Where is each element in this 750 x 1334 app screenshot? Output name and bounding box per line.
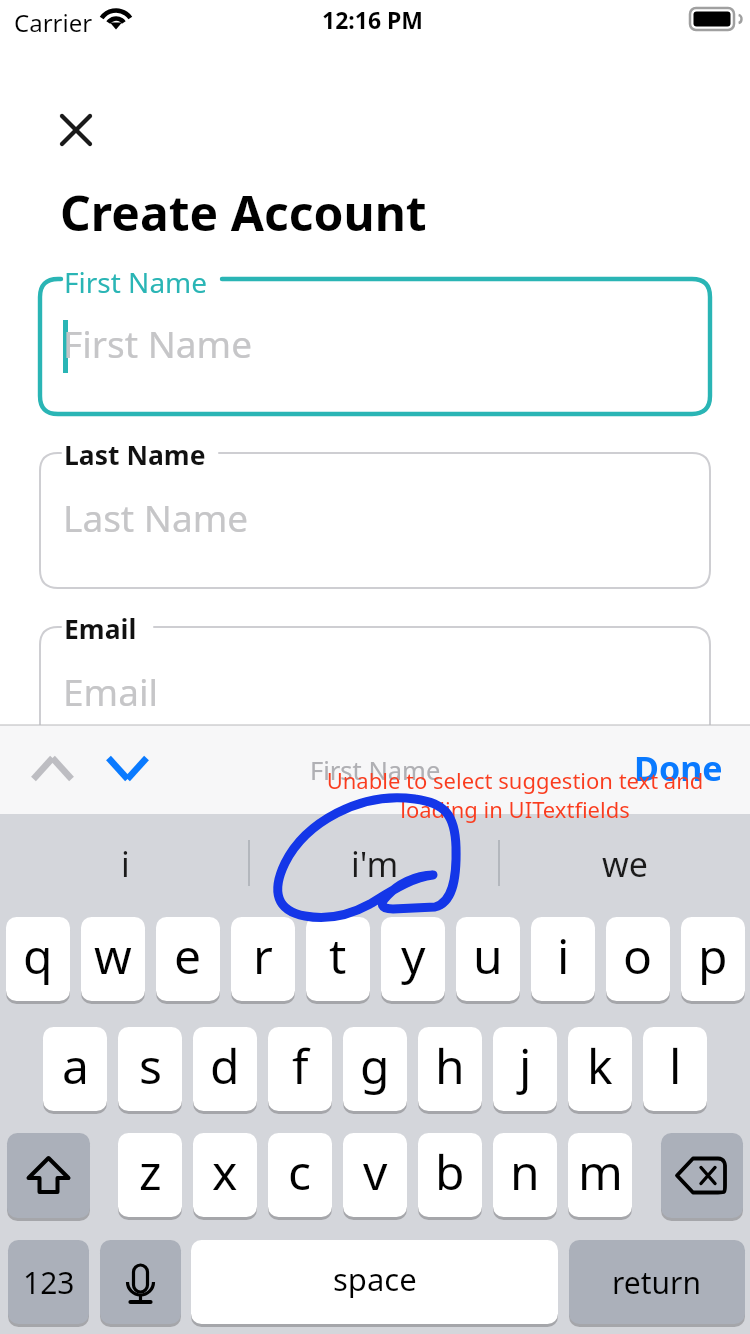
staticText: c	[288, 1139, 312, 1204]
button[interactable]: e	[156, 917, 220, 1001]
button[interactable]: i	[0, 816, 250, 915]
button[interactable]: m	[568, 1133, 632, 1217]
button[interactable]: g	[343, 1027, 407, 1111]
staticText: p	[698, 923, 728, 988]
button[interactable]: Last Name	[40, 453, 710, 588]
button[interactable]: Key	[7, 1133, 90, 1218]
staticText: Last Name	[63, 492, 249, 542]
button[interactable]: d	[193, 1027, 257, 1111]
button[interactable]: 123	[8, 1240, 89, 1324]
staticText: Last Name	[64, 437, 206, 473]
button[interactable]: i'm	[250, 816, 500, 915]
staticText: l	[669, 1033, 682, 1098]
staticText: z	[139, 1139, 162, 1204]
staticText: d	[210, 1033, 240, 1098]
button[interactable]: j	[493, 1027, 557, 1111]
staticText: g	[360, 1033, 390, 1098]
staticText: b	[435, 1139, 465, 1204]
button[interactable]: t	[306, 917, 370, 1001]
staticText: Carrier	[14, 6, 93, 39]
button[interactable]: space	[191, 1240, 558, 1324]
staticText: x	[212, 1139, 238, 1204]
button[interactable]: a	[43, 1027, 107, 1111]
staticText: a	[62, 1033, 89, 1098]
staticText: space	[333, 1258, 417, 1300]
button[interactable]: p	[681, 917, 745, 1001]
button[interactable]: u	[456, 917, 520, 1001]
button[interactable]: h	[418, 1027, 482, 1111]
button[interactable]: n	[493, 1133, 557, 1217]
staticText: 123	[23, 1262, 75, 1303]
staticText: e	[174, 923, 202, 988]
button[interactable]: q	[6, 917, 70, 1001]
button[interactable]: Done	[634, 745, 734, 791]
staticText: i	[557, 923, 570, 988]
staticText: Email	[64, 611, 137, 647]
staticText: v	[363, 1139, 388, 1204]
staticText: 12:16 PM	[322, 4, 424, 35]
staticText: o	[623, 923, 653, 988]
staticText: j	[519, 1033, 532, 1098]
button[interactable]: r	[231, 917, 295, 1001]
staticText: Unable to select suggestion text and loa…	[215, 765, 750, 824]
button[interactable]: b	[418, 1133, 482, 1217]
staticText: m	[578, 1139, 623, 1204]
button[interactable]: c	[268, 1133, 332, 1217]
button[interactable]: v	[343, 1133, 407, 1217]
button[interactable]: return	[569, 1240, 745, 1324]
staticText: r	[253, 923, 273, 988]
staticText: u	[473, 923, 503, 988]
staticText: i'm	[351, 841, 399, 887]
button[interactable]: k	[568, 1027, 632, 1111]
staticText: n	[510, 1139, 540, 1204]
staticText: s	[139, 1033, 162, 1098]
button[interactable]: x	[193, 1133, 257, 1217]
staticText: y	[401, 923, 426, 988]
button[interactable]: o	[606, 917, 670, 1001]
staticText: f	[292, 1033, 309, 1098]
button[interactable]: y	[381, 917, 445, 1001]
staticText: i	[121, 841, 130, 887]
button[interactable]: i	[531, 917, 595, 1001]
button[interactable]: we	[500, 816, 750, 915]
staticText: First Name	[63, 318, 253, 368]
button[interactable]: Previous field	[25, 745, 80, 795]
button[interactable]: Key	[661, 1133, 743, 1218]
button[interactable]: Close	[44, 98, 108, 162]
staticText: t	[329, 923, 347, 988]
staticText: Done	[634, 745, 723, 791]
staticText: Email	[63, 666, 159, 716]
staticText: q	[23, 923, 53, 988]
button[interactable]: f	[268, 1027, 332, 1111]
button[interactable]: Email	[40, 627, 710, 762]
staticText: w	[94, 923, 132, 988]
staticText: return	[612, 1262, 702, 1303]
button[interactable]: l	[643, 1027, 707, 1111]
button[interactable]: Key	[100, 1240, 181, 1324]
button[interactable]: s	[118, 1027, 182, 1111]
button[interactable]: w	[81, 917, 145, 1001]
button[interactable]: First Name	[40, 279, 710, 414]
button[interactable]: Next field	[100, 745, 155, 795]
staticText: Create Account	[60, 180, 427, 245]
staticText: we	[602, 841, 648, 887]
staticText: First Name	[64, 263, 208, 301]
button[interactable]: z	[118, 1133, 182, 1217]
staticText: k	[587, 1033, 613, 1098]
staticText: First Name	[310, 753, 441, 788]
staticText: h	[435, 1033, 465, 1098]
